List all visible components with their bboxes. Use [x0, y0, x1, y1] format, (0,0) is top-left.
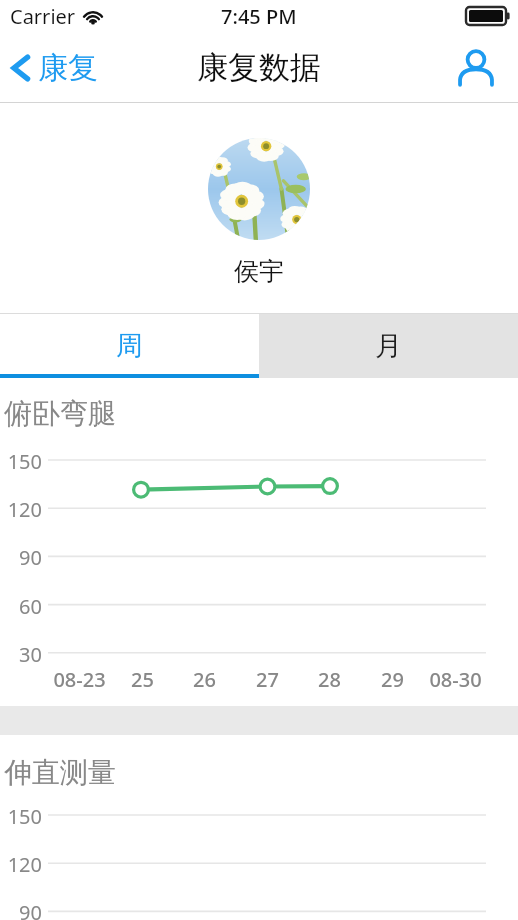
staticText: 康复数据: [197, 48, 321, 87]
button[interactable]: 月: [259, 313, 518, 378]
staticText: 150: [7, 803, 42, 830]
staticText: Carrier: [10, 3, 76, 30]
staticText: 月: [375, 329, 402, 363]
staticText: 120: [7, 851, 42, 878]
staticText: 25: [131, 666, 154, 693]
staticText: 周: [116, 329, 143, 363]
staticText: 60: [19, 593, 42, 620]
button[interactable]: 康复: [6, 43, 108, 93]
staticText: 90: [19, 899, 42, 920]
staticText: 150: [7, 448, 42, 475]
staticText: 08-30: [429, 666, 482, 693]
staticText: 7:45 PM: [221, 3, 297, 30]
button[interactable]: [208, 138, 310, 240]
staticText: 康复: [38, 49, 98, 87]
staticText: 29: [381, 666, 404, 693]
button[interactable]: 周: [0, 313, 259, 378]
staticText: 侯宇: [234, 256, 284, 287]
staticText: 俯卧弯腿: [4, 396, 116, 431]
staticText: 27: [256, 666, 279, 693]
button[interactable]: Profile: [448, 40, 504, 96]
staticText: 26: [193, 666, 216, 693]
staticText: 30: [19, 641, 42, 668]
staticText: 08-23: [53, 666, 106, 693]
staticText: 伸直测量: [4, 755, 116, 790]
staticText: 120: [7, 496, 42, 523]
staticText: 28: [318, 666, 341, 693]
staticText: 90: [19, 544, 42, 571]
